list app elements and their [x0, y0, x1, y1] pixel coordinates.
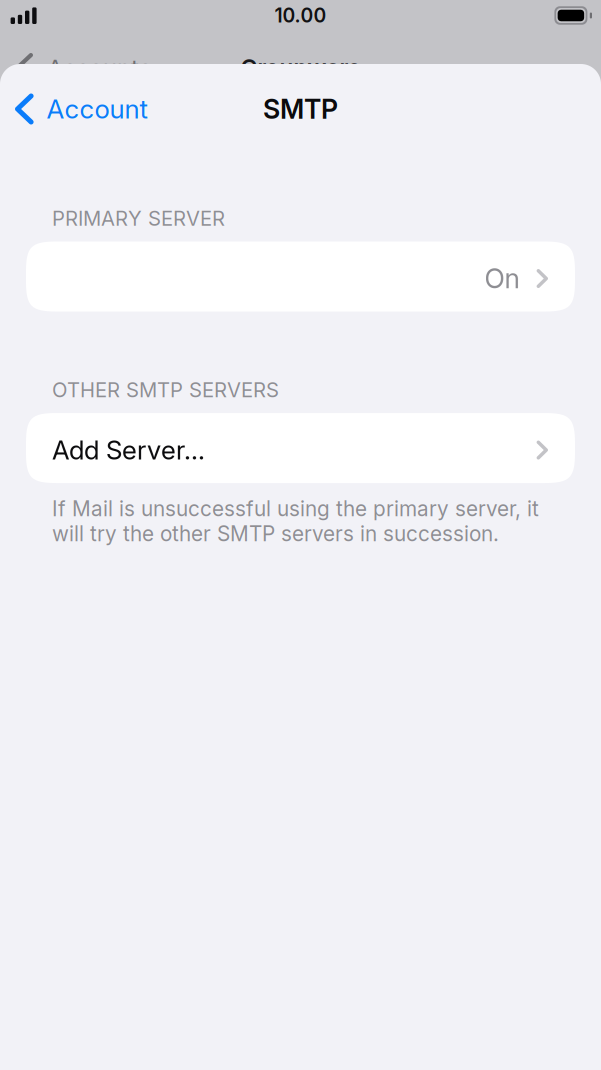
button[interactable]: On — [26, 241, 575, 311]
staticText: Add Server... — [52, 434, 205, 466]
button[interactable]: Account — [0, 84, 158, 134]
staticText: 10.00 — [274, 4, 326, 27]
staticText: Accounts — [47, 53, 151, 82]
staticText: If Mail is unsuccessful using the primar… — [52, 496, 539, 546]
staticText: On — [485, 262, 520, 295]
staticText: Account — [47, 93, 148, 125]
staticText: OTHER SMTP SERVERS — [52, 377, 279, 402]
staticText: SMTP — [263, 93, 338, 125]
button[interactable]: Add Server... — [26, 413, 575, 483]
staticText: Groupware — [240, 54, 360, 82]
staticText: PRIMARY SERVER — [52, 206, 225, 230]
